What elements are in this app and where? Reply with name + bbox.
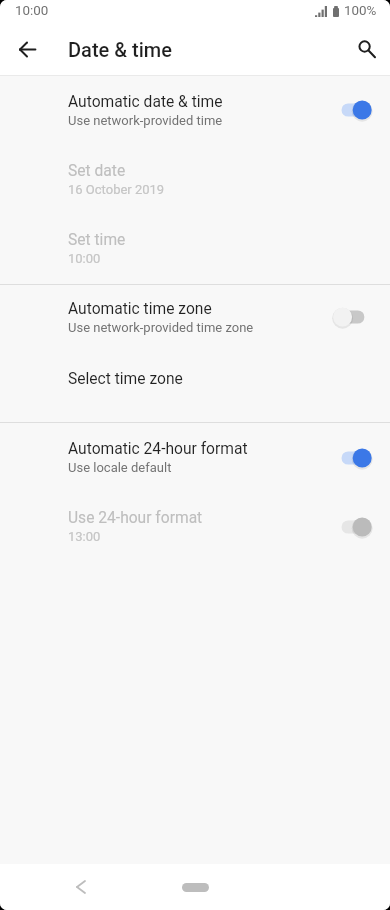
button[interactable]: Off (330, 303, 370, 331)
button[interactable]: Home (182, 883, 209, 892)
button[interactable]: Use 24-hour format (0, 492, 390, 561)
button[interactable]: Set time (0, 214, 390, 283)
staticText: Set date (68, 162, 126, 180)
staticText: Automatic date & time (68, 93, 223, 111)
staticText: Use network-provided time (68, 113, 223, 128)
button[interactable]: On (330, 513, 370, 541)
staticText: Date & time (68, 38, 172, 61)
staticText: 13:00 (68, 529, 101, 544)
staticText: 10:00 (15, 3, 49, 19)
button[interactable]: Set date (0, 145, 390, 214)
button[interactable]: Automatic date & time (0, 75, 390, 145)
staticText: 100% (344, 3, 377, 19)
button[interactable]: Select time zone (0, 350, 390, 408)
staticText: Automatic time zone (68, 300, 212, 318)
staticText: Use 24-hour format (68, 509, 203, 527)
staticText: 10:00 (68, 251, 101, 266)
button[interactable]: Navigate up (5, 27, 50, 72)
button[interactable]: On (330, 444, 370, 472)
staticText: Use locale default (68, 460, 172, 475)
button[interactable]: Automatic time zone (0, 285, 390, 349)
staticText: 16 October 2019 (68, 182, 165, 197)
staticText: Automatic 24-hour format (68, 440, 248, 458)
button[interactable]: Automatic 24-hour format (0, 423, 390, 492)
staticText: Use network-provided time zone (68, 320, 254, 335)
staticText: Select time zone (68, 370, 183, 388)
button[interactable]: On (330, 96, 370, 124)
button[interactable]: Search (342, 24, 388, 70)
staticText: Set time (68, 231, 126, 249)
button[interactable]: Back (67, 873, 95, 901)
